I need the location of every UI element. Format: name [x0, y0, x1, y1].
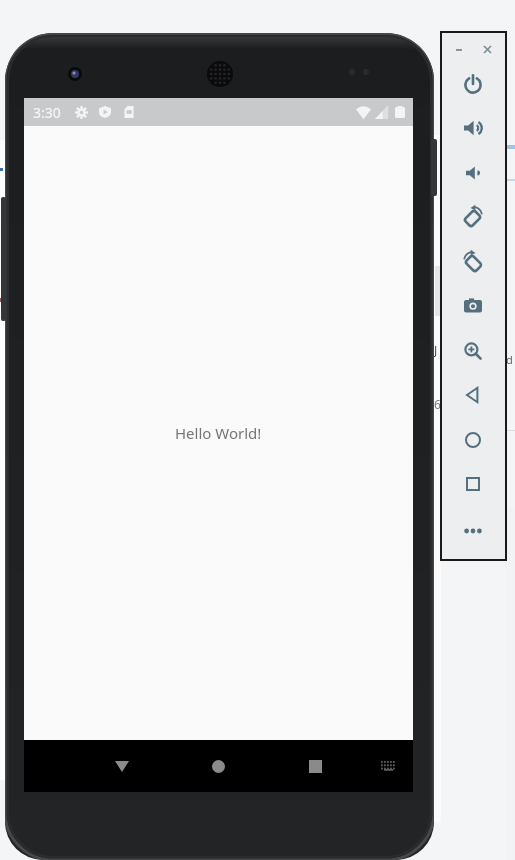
button[interactable] [459, 517, 487, 545]
staticText: 6 [434, 396, 441, 412]
button[interactable] [459, 159, 487, 187]
button[interactable] [206, 754, 230, 778]
button[interactable] [303, 754, 327, 778]
staticText: 3:30 [33, 103, 61, 122]
button[interactable] [459, 114, 487, 142]
button[interactable] [110, 754, 134, 778]
button[interactable] [459, 248, 487, 276]
button[interactable] [459, 470, 487, 498]
staticText: Hello World! [175, 423, 262, 443]
button[interactable] [459, 203, 487, 231]
button[interactable] [459, 70, 487, 98]
button[interactable] [459, 337, 487, 365]
button[interactable] [459, 292, 487, 320]
button[interactable] [459, 381, 487, 409]
staticText: J [434, 342, 438, 358]
staticText: d [506, 352, 513, 367]
button[interactable] [459, 426, 487, 454]
button[interactable] [377, 755, 399, 777]
button[interactable] [451, 42, 466, 56]
button[interactable] [480, 42, 495, 56]
